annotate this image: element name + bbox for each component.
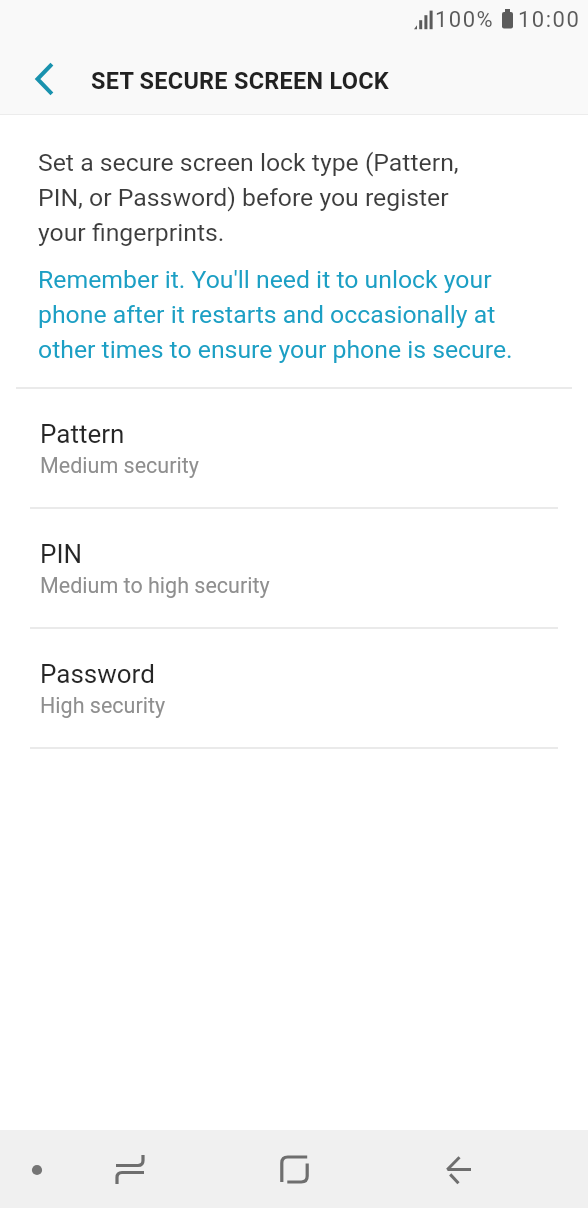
staticText: High security [40, 693, 166, 718]
staticText: 10:00 [518, 7, 581, 33]
staticText: Set a secure screen lock type (Pattern, … [38, 143, 459, 248]
button[interactable] [98, 1130, 162, 1208]
button[interactable]: Pattern [0, 389, 588, 509]
staticText: PIN [40, 539, 83, 569]
staticText: Password [40, 659, 155, 689]
button[interactable]: PIN [0, 509, 588, 629]
staticText: SET SECURE SCREEN LOCK [91, 67, 389, 95]
staticText: Medium security [40, 453, 199, 478]
staticText: 100% [435, 7, 495, 33]
staticText: Pattern [40, 419, 125, 449]
button[interactable] [8, 43, 80, 115]
button[interactable] [7, 1130, 67, 1208]
staticText: Medium to high security [40, 573, 270, 598]
button[interactable]: Password [0, 629, 588, 749]
staticText: Remember it. You'll need it to unlock yo… [38, 260, 513, 365]
button[interactable] [262, 1130, 326, 1208]
button[interactable] [428, 1130, 492, 1208]
